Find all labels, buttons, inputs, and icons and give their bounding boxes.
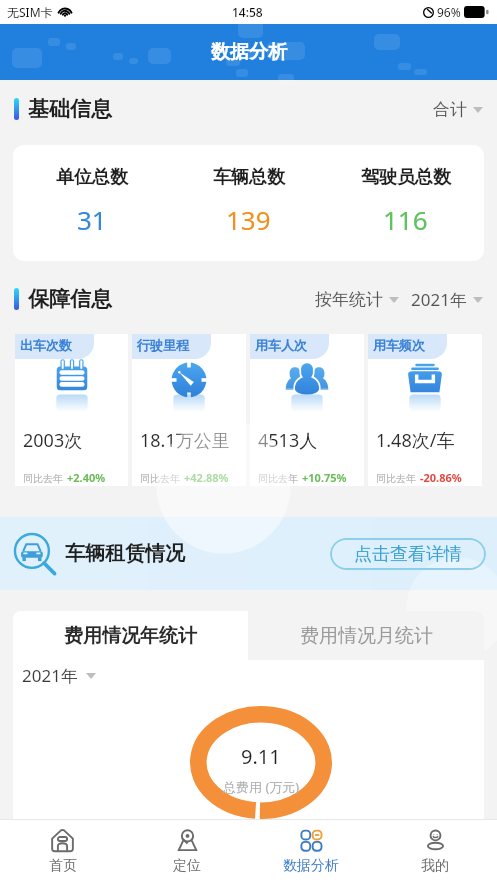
button[interactable]: 我的 (373, 820, 497, 883)
other: 首页 (51, 829, 74, 852)
button[interactable]: 按年统计 (315, 289, 399, 310)
button[interactable]: 用车频次 (368, 334, 482, 486)
staticText: 基础信息 (28, 96, 112, 122)
staticText: 31 (77, 202, 107, 237)
staticText: 总费用 (万元) (223, 778, 300, 796)
staticText: 点击查看详情 (354, 543, 462, 566)
button[interactable]: 首页 (0, 820, 125, 883)
button[interactable]: 费用情况月统计 (248, 611, 484, 660)
other: 我的 (424, 829, 447, 852)
staticText: 4513人 (258, 428, 318, 453)
staticText: 单位总数 (56, 166, 128, 189)
staticText: 无SIM卡 (7, 4, 53, 20)
button[interactable]: 2021年 (22, 664, 96, 687)
button[interactable]: 定位 (125, 820, 249, 883)
staticText: 保障信息 (28, 286, 112, 312)
staticText: +2.40% (67, 470, 106, 485)
staticText: 我的 (421, 857, 449, 875)
other: 车辆租赁情况 (13, 532, 57, 576)
button[interactable]: 数据分析 (249, 820, 373, 883)
staticText: 同比去年 (376, 472, 416, 485)
staticText: 2003次 (23, 428, 83, 453)
staticText: 同比去年 (23, 472, 63, 485)
staticText: 同比去年 (258, 472, 298, 485)
button[interactable]: 点击查看详情 (330, 538, 486, 570)
staticText: 按年统计 (315, 289, 383, 310)
staticText: 驾驶员总数 (361, 166, 451, 189)
staticText: 首页 (49, 857, 77, 875)
staticText: 用车频次 (373, 337, 425, 353)
other: 定位 (176, 829, 199, 852)
staticText: 定位 (173, 857, 201, 875)
staticText: 2021年 (22, 664, 78, 687)
staticText: 车辆租赁情况 (65, 541, 185, 566)
other: 数据分析 (300, 829, 323, 852)
staticText: 合计 (433, 99, 467, 120)
staticText: 行驶里程 (137, 337, 189, 353)
button[interactable]: 2021年 (411, 288, 483, 311)
staticText: 2021年 (411, 288, 467, 311)
staticText: 同比去年 (140, 472, 180, 485)
staticText: 数据分析 (283, 857, 339, 875)
button[interactable]: 行驶里程 (132, 334, 246, 486)
button[interactable]: 单位总数 (13, 145, 484, 261)
staticText: 1.48次/车 (376, 428, 455, 453)
staticText: +42.88% (184, 470, 229, 485)
staticText: 数据分析 (211, 40, 287, 64)
button[interactable]: 合计 (433, 99, 483, 120)
staticText: 116 (383, 202, 428, 237)
staticText: 费用情况年统计 (64, 624, 197, 648)
staticText: 用车人次 (255, 337, 307, 353)
staticText: -20.86% (420, 470, 462, 485)
staticText: 139 (226, 202, 271, 237)
button[interactable]: 用车人次 (250, 334, 364, 486)
staticText: 出车次数 (20, 337, 72, 353)
staticText: 9.11 (241, 743, 281, 770)
staticText: 14:58 (232, 4, 263, 20)
staticText: 18.1万公里 (140, 428, 230, 453)
button[interactable]: 出车次数 (15, 334, 128, 486)
staticText: 车辆总数 (213, 166, 285, 189)
staticText: 费用情况月统计 (300, 624, 433, 648)
staticText: 96% (437, 4, 461, 20)
staticText: +10.75% (302, 470, 347, 485)
button[interactable]: 费用情况年统计 (13, 611, 248, 660)
